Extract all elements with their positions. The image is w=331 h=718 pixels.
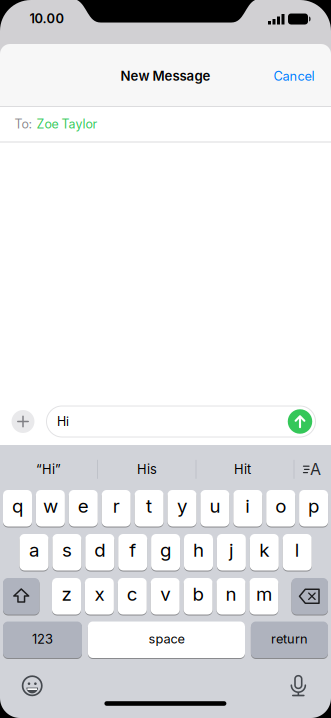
button[interactable]: y [167,489,196,527]
button[interactable]: 123 [3,621,82,658]
button[interactable]: p [299,489,328,527]
staticText: r [113,495,120,517]
button[interactable]: x [85,577,114,615]
button[interactable]: His [99,451,195,487]
staticText: m [256,583,272,605]
button[interactable]: g [151,533,180,571]
staticText: x [94,583,104,605]
button[interactable]: q [3,489,32,527]
staticText: j [229,539,234,561]
staticText: d [94,539,105,561]
staticText: p [308,495,319,517]
button[interactable]: m [249,577,278,615]
button[interactable]: Cancel [266,61,322,91]
staticText: t [146,495,152,517]
staticText: His [137,461,157,477]
button[interactable]: f [118,533,147,571]
button[interactable]: h [184,533,213,571]
staticText: y [177,495,187,517]
staticText: Cancel [273,68,314,84]
button[interactable]: Delete [291,578,328,614]
staticText: k [259,539,269,561]
button[interactable]: v [151,577,180,615]
staticText: Hit [234,461,251,477]
button[interactable]: o [266,489,295,527]
staticText: New Message [120,68,210,84]
staticText: “Hi” [36,461,61,477]
button[interactable]: w [36,489,65,527]
staticText: Hi [57,414,69,429]
staticText: o [275,495,286,517]
button[interactable]: Send [288,409,312,434]
button[interactable]: Emoji [17,671,47,701]
button[interactable]: c [118,577,147,615]
staticText: return [271,631,308,647]
staticText: To: [14,116,32,131]
staticText: i [245,495,250,517]
staticText: n [225,583,236,605]
staticText: q [12,495,23,517]
staticText: A [310,460,321,479]
button[interactable]: return [251,621,328,658]
button[interactable]: r [102,489,131,527]
button[interactable]: k [250,533,279,571]
staticText: h [193,539,204,561]
staticText: l [295,539,300,561]
button[interactable]: Message [46,405,316,437]
staticText: b [193,583,204,605]
button[interactable]: b [184,577,213,615]
staticText: z [61,583,71,605]
button[interactable]: u [200,489,229,527]
staticText: a [29,539,39,561]
button[interactable]: a [19,533,48,571]
staticText: v [160,583,170,605]
staticText: w [43,495,58,517]
staticText: s [62,539,72,561]
button[interactable]: Predictive [291,448,331,484]
button[interactable]: d [85,533,114,571]
staticText: space [148,631,184,647]
staticText: g [160,539,171,561]
button[interactable]: Shift [3,578,39,614]
staticText: 123 [32,631,53,647]
button[interactable]: space [88,621,245,658]
button[interactable]: s [52,533,81,571]
staticText: e [78,495,89,517]
staticText: 10.00 [29,11,64,26]
button[interactable]: l [283,533,312,571]
staticText: f [129,539,136,561]
button[interactable]: z [52,577,81,615]
button[interactable]: Attach [11,410,34,433]
button[interactable]: i [233,489,262,527]
button[interactable]: To: [14,107,97,141]
staticText: u [209,495,220,517]
button[interactable]: e [69,489,98,527]
button[interactable]: Hit [196,451,288,487]
staticText: Zoe Taylor [36,116,97,131]
button[interactable]: Dictate [283,671,313,701]
button[interactable]: t [135,489,164,527]
staticText: c [127,583,138,605]
button[interactable]: “Hi” [0,451,96,487]
button[interactable]: j [217,533,246,571]
button[interactable]: n [216,577,245,615]
